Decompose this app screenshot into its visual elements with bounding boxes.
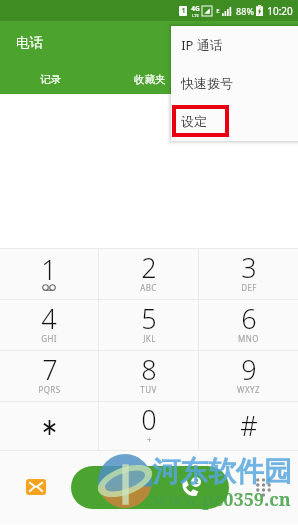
staticText: LTE [192, 13, 199, 18]
button[interactable]: 9 [199, 351, 298, 401]
button[interactable]: 0 [99, 402, 198, 450]
staticText: JKL [143, 333, 156, 344]
button[interactable]: Call with SIM 1 [71, 466, 150, 509]
button[interactable]: 2 [99, 249, 198, 299]
button[interactable]: 6 [199, 300, 298, 350]
staticText: 2 [194, 477, 199, 487]
staticText: 电话 [16, 34, 43, 51]
button[interactable]: 1 [0, 249, 98, 299]
staticText: 9 [241, 351, 257, 388]
staticText: WXYZ [237, 384, 260, 395]
staticText: 河东软件园 [152, 454, 292, 489]
staticText: MNO [238, 333, 259, 344]
staticText: 7 [42, 351, 58, 388]
staticText: 5 [141, 300, 157, 337]
button[interactable]: 3 [199, 249, 298, 299]
button[interactable]: 收藏夹 [100, 64, 199, 94]
staticText: 1 [181, 6, 186, 16]
button[interactable]: 4 [0, 300, 98, 350]
button[interactable]: 5 [99, 300, 198, 350]
staticText: E [216, 7, 220, 15]
staticText: PQRS [38, 384, 61, 395]
staticText: 快速拨号 [181, 75, 233, 91]
staticText: 设定 [181, 113, 207, 129]
staticText: 4 [41, 300, 57, 337]
button[interactable]: Call with SIM 2 [150, 466, 229, 509]
button[interactable]: 7 [0, 351, 98, 401]
staticText: 6 [241, 300, 257, 337]
button[interactable]: IP 通话 [171, 26, 298, 64]
button[interactable]: # [199, 402, 298, 450]
staticText: + [147, 434, 152, 445]
staticText: 4G [191, 4, 200, 13]
staticText: ABC [140, 282, 157, 293]
button[interactable]: 8 [99, 351, 198, 401]
staticText: 10:20 [267, 4, 293, 18]
staticText: # [240, 407, 258, 444]
staticText: TUV [140, 384, 157, 395]
staticText: GHI [41, 333, 57, 344]
button[interactable]: Keypad [229, 458, 298, 516]
button[interactable]: 联系人 [199, 64, 298, 94]
button[interactable]: 记录 [0, 64, 100, 94]
staticText: DEF [241, 282, 257, 293]
staticText: 88% [236, 5, 254, 17]
staticText: 2 [141, 249, 157, 286]
staticText: 收藏夹 [134, 73, 166, 86]
staticText: www.pc0359.cn [152, 487, 291, 512]
button[interactable]: 设定 [171, 102, 298, 140]
staticText: 3 [241, 249, 257, 286]
staticText: 0 [141, 401, 157, 438]
staticText: 1 [41, 251, 57, 288]
button[interactable] [0, 402, 98, 450]
staticText: 记录 [40, 73, 61, 86]
staticText: 8 [141, 351, 157, 388]
button[interactable]: Message [0, 458, 71, 516]
staticText: IP 通话 [181, 36, 223, 54]
button[interactable]: 快速拨号 [171, 64, 298, 102]
